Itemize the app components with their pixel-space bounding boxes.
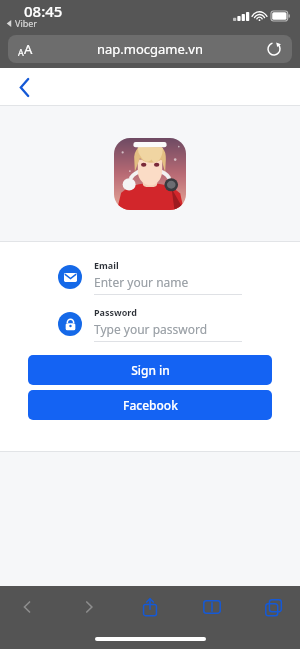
button[interactable]: nap.mocgame.vn: [8, 35, 292, 63]
staticText: Type your password: [94, 321, 208, 337]
button[interactable]: Email: [58, 259, 242, 295]
button[interactable]: Sign in: [28, 355, 272, 385]
button[interactable]: Forward: [76, 594, 102, 620]
staticText: Sign in: [131, 362, 170, 378]
staticText: Viber: [15, 17, 38, 29]
staticText: 08:45: [24, 1, 63, 21]
button[interactable]: Facebook: [28, 390, 272, 420]
button[interactable]: Share: [137, 594, 163, 620]
button[interactable]: Back: [8, 70, 42, 104]
staticText: Facebook: [123, 397, 178, 413]
button[interactable]: [114, 138, 186, 210]
button[interactable]: Password: [58, 306, 242, 342]
staticText: nap.mocgame.vn: [97, 40, 203, 58]
button[interactable]: Bookmarks: [199, 594, 225, 620]
button[interactable]: Text size options: [18, 40, 33, 58]
button[interactable]: Back: [14, 594, 40, 620]
staticText: Enter your name: [94, 274, 189, 290]
button[interactable]: Tabs: [260, 594, 286, 620]
button[interactable]: Reload: [264, 39, 284, 59]
staticText: A: [24, 40, 33, 58]
staticText: Password: [94, 306, 137, 318]
staticText: A: [18, 46, 24, 58]
staticText: Email: [94, 259, 119, 271]
